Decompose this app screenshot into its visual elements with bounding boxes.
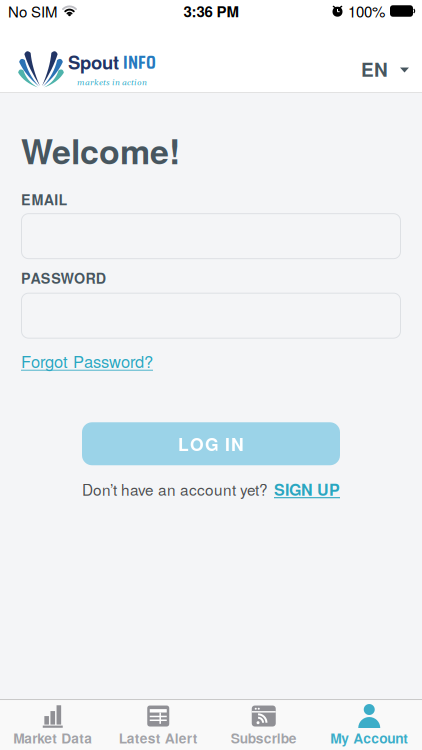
staticText: No SIM bbox=[8, 0, 57, 22]
staticText: PASSWORD bbox=[21, 268, 106, 288]
staticText: Forgot Password? bbox=[21, 349, 153, 373]
staticText: Spout bbox=[68, 49, 119, 75]
staticText: EN bbox=[361, 55, 388, 83]
button[interactable]: Forgot Password? bbox=[21, 349, 153, 373]
button[interactable]: SIGN UP bbox=[274, 478, 340, 501]
button[interactable]: Log In bbox=[82, 422, 340, 465]
button[interactable]: Language bbox=[361, 55, 409, 83]
staticText: SIGN UP bbox=[274, 478, 340, 501]
staticText: Market Data bbox=[13, 728, 92, 748]
staticText: My Account bbox=[330, 728, 408, 748]
staticText: markets in action bbox=[77, 77, 147, 88]
staticText: 100% bbox=[348, 0, 385, 22]
staticText: INFO bbox=[123, 47, 156, 77]
button[interactable]: Password bbox=[21, 293, 401, 339]
staticText: EMAIL bbox=[21, 189, 68, 210]
staticText: L O G I N bbox=[178, 431, 244, 456]
staticText: Welcome! bbox=[21, 126, 180, 175]
button[interactable]: Market Data bbox=[0, 702, 105, 748]
staticText: Latest Alert bbox=[119, 728, 198, 748]
button[interactable]: Subscribe bbox=[211, 702, 316, 748]
staticText: 3:36 PM bbox=[183, 0, 238, 22]
staticText: Subscribe bbox=[231, 728, 297, 748]
button[interactable]: My Account bbox=[316, 702, 422, 748]
button[interactable]: Email bbox=[21, 213, 401, 259]
staticText: Don’t have an account yet? bbox=[82, 478, 268, 500]
button[interactable]: Latest Alert bbox=[105, 702, 211, 748]
